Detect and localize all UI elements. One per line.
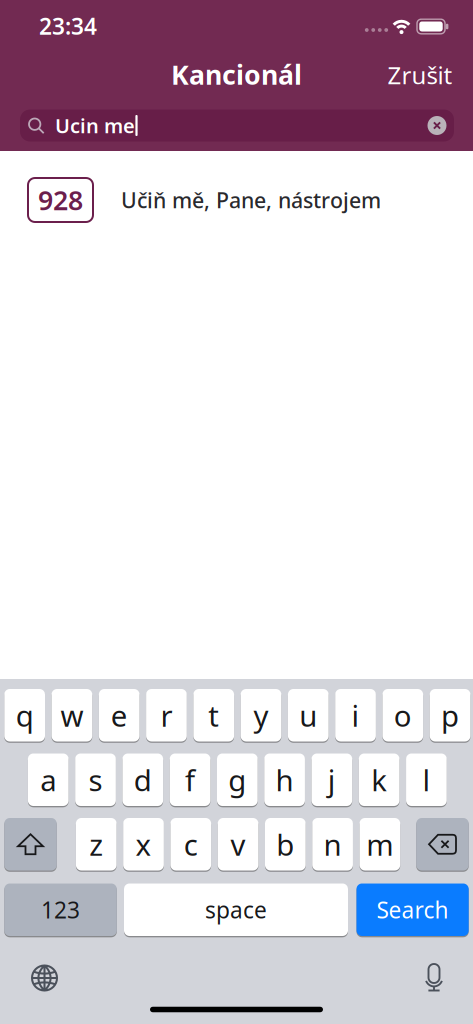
button[interactable]: o: [382, 688, 423, 742]
button[interactable]: e: [99, 688, 139, 742]
button[interactable]: p: [430, 688, 470, 742]
staticText: Ucin me: [55, 112, 135, 139]
button[interactable]: c: [170, 817, 211, 871]
staticText: d: [134, 760, 152, 799]
staticText: n: [324, 825, 342, 864]
staticText: f: [185, 760, 195, 799]
staticText: g: [228, 760, 246, 799]
button[interactable]: v: [218, 817, 258, 871]
button[interactable]: l: [406, 753, 447, 807]
button[interactable]: j: [311, 753, 352, 807]
button[interactable]: x: [123, 817, 164, 871]
button[interactable]: z: [76, 817, 117, 871]
button[interactable]: 123: [4, 883, 117, 937]
staticText: 123: [41, 895, 80, 925]
staticText: c: [184, 825, 198, 864]
staticText: t: [208, 696, 219, 735]
staticText: s: [88, 760, 102, 799]
staticText: w: [60, 696, 83, 735]
button[interactable]: Shift: [4, 817, 57, 871]
button[interactable]: w: [52, 688, 92, 742]
button[interactable]: Clear text: [427, 116, 446, 135]
button[interactable]: f: [170, 753, 210, 807]
button[interactable]: Ucin me: [20, 109, 454, 141]
button[interactable]: u: [288, 688, 329, 742]
staticText: r: [160, 696, 172, 735]
staticText: v: [231, 825, 246, 864]
staticText: space: [205, 895, 267, 925]
staticText: a: [40, 760, 56, 799]
button[interactable]: a: [28, 753, 69, 807]
staticText: h: [276, 760, 294, 799]
staticText: u: [299, 696, 317, 735]
button[interactable]: h: [264, 753, 305, 807]
button[interactable]: r: [146, 688, 187, 742]
staticText: b: [276, 825, 294, 864]
staticText: o: [394, 696, 412, 735]
button[interactable]: t: [193, 688, 234, 742]
button[interactable]: k: [359, 753, 399, 807]
button[interactable]: s: [75, 753, 116, 807]
staticText: q: [16, 696, 34, 735]
button[interactable]: d: [122, 753, 163, 807]
button[interactable]: Delete: [416, 817, 469, 871]
button[interactable]: 928: [0, 156, 473, 244]
staticText: Zrušit: [387, 59, 452, 91]
staticText: y: [253, 696, 268, 735]
button[interactable]: g: [217, 753, 258, 807]
button[interactable]: space: [124, 883, 348, 937]
button[interactable]: y: [241, 688, 281, 742]
button[interactable]: q: [4, 688, 45, 742]
button[interactable]: i: [335, 688, 376, 742]
button[interactable]: b: [265, 817, 306, 871]
staticText: e: [111, 696, 128, 735]
staticText: z: [89, 825, 103, 864]
button[interactable]: Search: [356, 883, 469, 937]
button[interactable]: Dictation: [424, 964, 444, 992]
staticText: k: [371, 760, 387, 799]
button[interactable]: Next keyboard: [31, 964, 58, 991]
staticText: i: [351, 696, 359, 735]
staticText: 928: [38, 182, 83, 218]
staticText: j: [328, 760, 336, 799]
staticText: l: [422, 760, 430, 799]
staticText: x: [135, 825, 151, 864]
button[interactable]: m: [359, 817, 400, 871]
button[interactable]: n: [312, 817, 353, 871]
staticText: 23:34: [39, 11, 97, 41]
button[interactable]: Zrušit: [387, 59, 452, 91]
staticText: Kancionál: [171, 57, 302, 92]
staticText: m: [366, 825, 393, 864]
staticText: Učiň mě, Pane, nástrojem: [121, 186, 381, 214]
staticText: p: [441, 696, 459, 735]
staticText: Search: [377, 895, 449, 925]
